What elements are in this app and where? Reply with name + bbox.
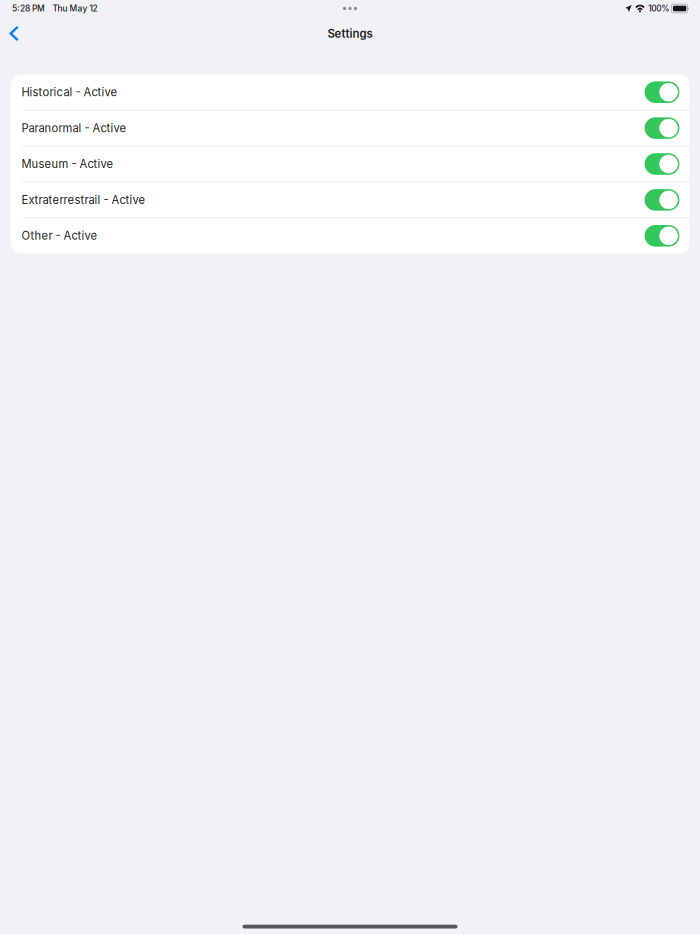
button[interactable]: Museum - Active: [645, 153, 679, 175]
button[interactable]: Extraterrestrail - Active: [645, 189, 679, 211]
staticText: Extraterrestrail - Active: [22, 193, 146, 207]
button[interactable]: Paranormal - Active: [11, 110, 689, 146]
staticText: Thu May 12: [53, 3, 98, 14]
button[interactable]: Other - Active: [11, 218, 689, 253]
staticText: Museum - Active: [22, 157, 114, 171]
staticText: 100%: [648, 3, 669, 14]
button[interactable]: Other - Active: [645, 225, 679, 247]
staticText: Paranormal - Active: [22, 121, 127, 135]
button[interactable]: Paranormal - Active: [645, 117, 679, 139]
button[interactable]: Historical - Active: [645, 81, 679, 103]
button[interactable]: Historical - Active: [11, 75, 689, 110]
button[interactable]: Back: [1, 19, 27, 47]
staticText: Other - Active: [22, 229, 98, 243]
staticText: 5:28 PM: [12, 3, 45, 14]
staticText: Settings: [327, 27, 372, 40]
button[interactable]: Museum - Active: [11, 146, 689, 182]
staticText: Historical - Active: [22, 85, 118, 99]
button[interactable]: Extraterrestrail - Active: [11, 182, 689, 217]
